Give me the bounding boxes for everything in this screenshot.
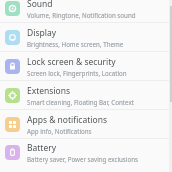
button[interactable]: Extensions: [0, 81, 172, 109]
button[interactable]: Sound: [0, 0, 172, 22]
staticText: Battery saver, Power saving exclusions: [27, 155, 138, 163]
button[interactable]: Display: [0, 23, 172, 51]
button[interactable]: Battery: [0, 139, 172, 166]
staticText: Brightness, Home screen, Theme: [27, 40, 124, 48]
staticText: Screen lock, Fingerprints, Location: [27, 69, 127, 77]
staticText: Smart cleaning, Floating Bar, Context Aw…: [27, 98, 164, 106]
staticText: Volume, Ringtone, Notification sound: [27, 11, 136, 19]
button[interactable]: Apps & notifications: [0, 110, 172, 138]
staticText: App info, Notifications: [27, 127, 92, 135]
button[interactable]: Lock screen & security: [0, 52, 172, 80]
staticText: Battery: [27, 142, 57, 154]
staticText: Display: [27, 27, 56, 39]
staticText: Apps & notifications: [27, 114, 107, 126]
staticText: Lock screen & security: [27, 56, 116, 68]
staticText: Extensions: [27, 85, 71, 97]
staticText: Sound: [27, 0, 53, 10]
